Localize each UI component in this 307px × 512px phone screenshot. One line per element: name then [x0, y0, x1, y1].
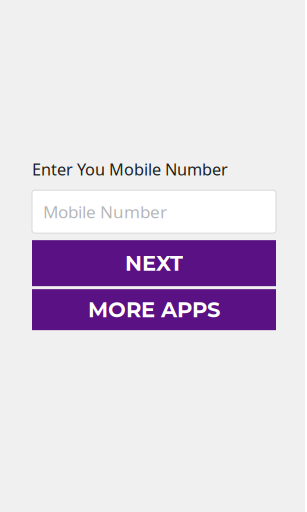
staticText: MORE APPS [88, 297, 220, 322]
button[interactable]: NEXT [32, 240, 276, 286]
staticText: Enter You Mobile Number [32, 158, 228, 180]
staticText: NEXT [125, 250, 183, 276]
button[interactable]: MORE APPS [32, 289, 276, 330]
staticText: Mobile Number [43, 200, 167, 223]
button[interactable]: Mobile Number [32, 190, 276, 233]
